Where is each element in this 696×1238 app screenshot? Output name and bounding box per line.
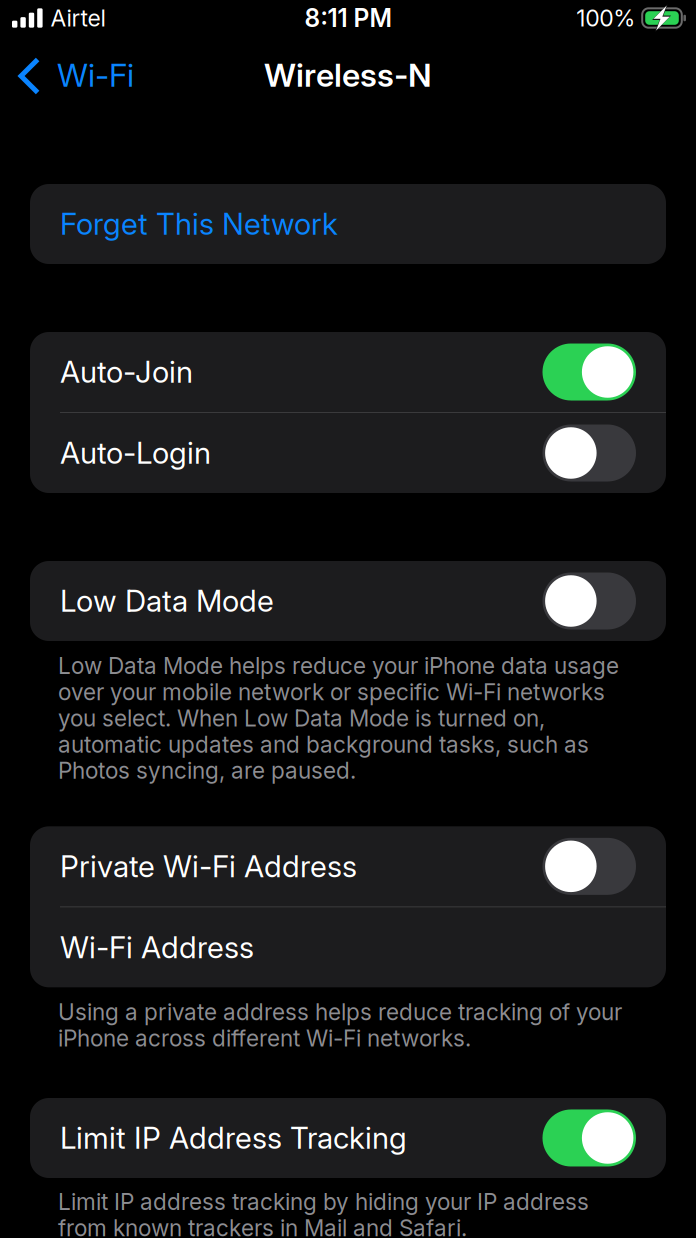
staticText: Airtel — [51, 4, 106, 32]
staticText: Low Data Mode helps reduce your iPhone d… — [58, 652, 619, 784]
button[interactable]: Wi-Fi Address — [30, 907, 666, 987]
staticText: Using a private address helps reduce tra… — [58, 998, 622, 1052]
staticText: Wi-Fi — [57, 56, 134, 94]
button[interactable]: Auto-Login — [30, 413, 666, 493]
staticText: Auto-Login — [60, 435, 211, 471]
staticText: Forget This Network — [60, 206, 338, 242]
button[interactable]: Back to Wi-Fi — [0, 45, 148, 105]
staticText: 8:11 PM — [304, 3, 391, 33]
button[interactable]: Forget This Network — [30, 184, 666, 264]
staticText: Limit IP Address Tracking — [60, 1120, 407, 1156]
button[interactable]: Auto-Join — [30, 332, 666, 412]
button[interactable]: Private Wi-Fi Address — [30, 826, 666, 906]
staticText: Wireless-N — [264, 56, 432, 94]
staticText: Private Wi-Fi Address — [60, 848, 357, 884]
staticText: Limit IP address tracking by hiding your… — [58, 1188, 589, 1238]
staticText: Auto-Join — [60, 354, 193, 390]
staticText: 100% — [576, 4, 635, 32]
button[interactable]: Low Data Mode — [30, 561, 666, 641]
staticText: Wi-Fi Address — [60, 929, 254, 965]
staticText: Low Data Mode — [60, 583, 274, 619]
button[interactable]: Limit IP Address Tracking — [30, 1098, 666, 1178]
